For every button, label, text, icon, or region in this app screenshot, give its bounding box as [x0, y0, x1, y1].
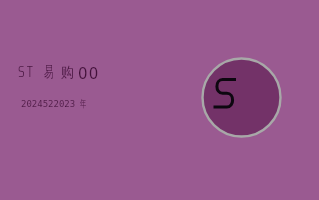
staticText: 2024522023 — [21, 99, 76, 109]
staticText: ST — [18, 60, 36, 84]
staticText: 00 — [78, 65, 100, 82]
staticText: 易 — [44, 63, 53, 82]
staticText: 年 — [80, 97, 86, 110]
button[interactable]: Stock logo S — [201, 57, 282, 138]
staticText: 购 — [61, 64, 74, 82]
